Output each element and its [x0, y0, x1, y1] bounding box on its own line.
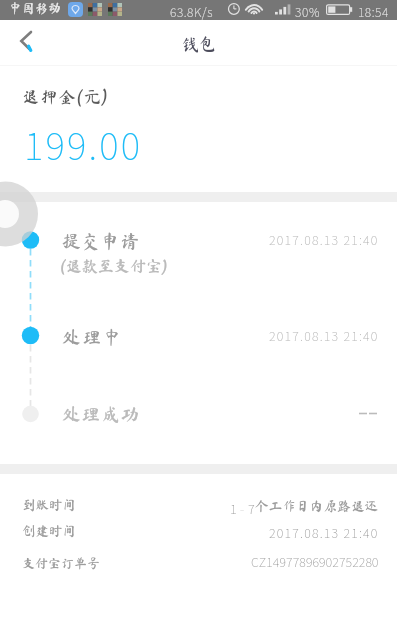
staticText: 7	[248, 499, 255, 518]
staticText: 提交申请	[62, 232, 140, 251]
staticText: 199.00	[24, 117, 143, 171]
staticText: 2017.08.13 21:40	[269, 230, 379, 248]
staticText: CZ14977896902752280	[251, 552, 379, 570]
staticText: 创建时间	[22, 524, 76, 538]
button[interactable]: Back	[4, 20, 50, 65]
staticText: 2017.08.13 21:40	[269, 523, 379, 541]
staticText: 1	[230, 499, 237, 518]
staticText: 处理中	[62, 328, 124, 347]
staticText: 退押金(元)	[22, 88, 109, 105]
staticText: 支付宝订单号	[22, 557, 101, 570]
staticText: 2017.08.13 21:40	[269, 326, 379, 344]
staticText: 18:54	[358, 3, 389, 20]
staticText: 30%	[295, 3, 321, 20]
staticText: (退款至支付宝)	[60, 258, 168, 274]
staticText: 63.8K/s	[170, 3, 214, 20]
staticText: -	[240, 499, 245, 518]
staticText: 中国移动	[9, 2, 62, 15]
staticText: 钱包	[182, 36, 216, 53]
staticText: 到账时间	[22, 498, 76, 512]
staticText: 个工作日内原路退还	[255, 499, 379, 513]
staticText: 处理成功	[62, 405, 140, 424]
